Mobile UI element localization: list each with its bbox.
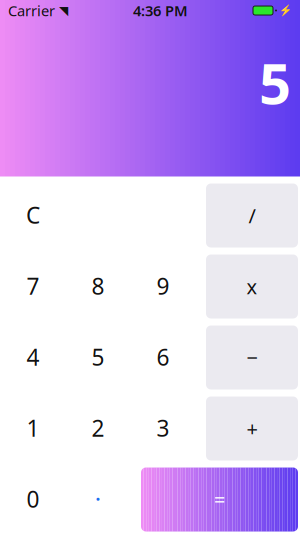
button[interactable]: 3	[130, 392, 196, 463]
staticText: 3	[156, 413, 169, 443]
staticText: +	[246, 415, 257, 442]
staticText: 2	[91, 413, 104, 443]
staticText: 7	[26, 271, 39, 301]
staticText: ·	[95, 487, 100, 510]
staticText: 4:36 PM	[133, 1, 188, 20]
staticText: 8	[91, 271, 104, 301]
staticText: =	[214, 486, 225, 513]
staticText: 9	[156, 271, 169, 301]
button[interactable]: /	[206, 183, 298, 247]
staticText: Carrier	[8, 1, 55, 20]
staticText: 6	[156, 342, 169, 372]
button[interactable]: 7	[0, 250, 66, 321]
button[interactable]: 8	[65, 250, 131, 321]
button[interactable]: =	[141, 467, 298, 531]
button[interactable]: 1	[0, 392, 66, 463]
staticText: ◥	[59, 4, 68, 17]
button[interactable]: ·	[65, 463, 131, 533]
staticText: 5	[91, 342, 104, 372]
button[interactable]: 6	[130, 321, 196, 392]
staticText: 4	[26, 342, 39, 372]
button[interactable]: 2	[65, 392, 131, 463]
button[interactable]: +	[206, 396, 298, 460]
staticText: 0	[26, 484, 39, 514]
staticText: C	[26, 200, 40, 230]
button[interactable]: x	[206, 254, 298, 318]
staticText: 1	[26, 413, 39, 443]
button[interactable]: 0	[0, 463, 66, 533]
staticText: −	[246, 344, 257, 371]
button[interactable]: 9	[130, 250, 196, 321]
button[interactable]: 5	[65, 321, 131, 392]
button[interactable]: C	[0, 179, 66, 250]
button[interactable]: −	[206, 325, 298, 389]
staticText: 5	[259, 45, 291, 120]
staticText: ⚡	[279, 4, 292, 17]
staticText: x	[246, 273, 257, 300]
staticText: /	[248, 202, 255, 229]
button[interactable]: 4	[0, 321, 66, 392]
